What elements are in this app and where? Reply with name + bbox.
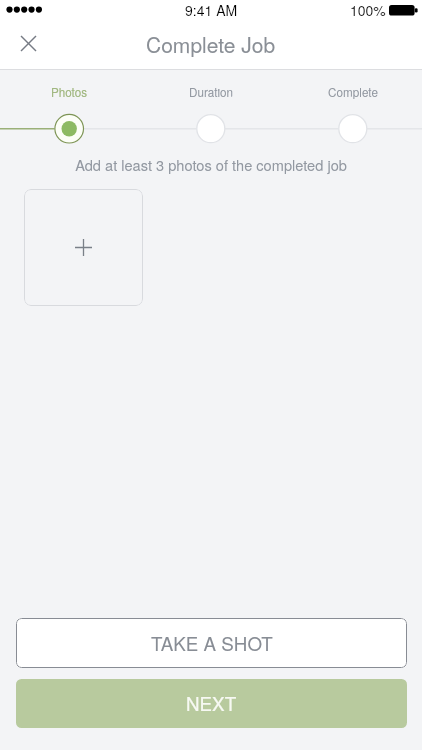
staticText: Photos — [9, 84, 129, 101]
staticText: TAKE A SHOT — [151, 629, 273, 656]
staticText: 100% — [350, 0, 386, 20]
button[interactable]: Close — [6, 22, 51, 65]
button[interactable]: Add photo — [24, 189, 143, 306]
staticText: NEXT — [186, 689, 237, 716]
button[interactable]: TAKE A SHOT — [16, 618, 407, 668]
staticText: Complete — [293, 84, 413, 101]
staticText: 9:41 AM — [185, 0, 238, 20]
staticText: Complete Job — [146, 29, 276, 59]
staticText: Duration — [151, 84, 271, 101]
staticText: Add at least 3 photos of the completed j… — [0, 154, 422, 175]
button[interactable]: NEXT — [16, 679, 407, 728]
